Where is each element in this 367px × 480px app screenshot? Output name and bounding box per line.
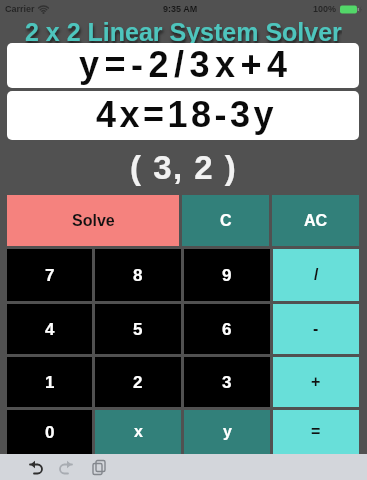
staticText: /	[314, 266, 319, 284]
button[interactable]	[25, 458, 45, 476]
staticText: 1	[45, 373, 55, 392]
staticText: 7	[45, 266, 55, 285]
button[interactable]: AC	[272, 195, 359, 246]
button[interactable]	[57, 458, 77, 476]
staticText: y	[223, 423, 232, 441]
button[interactable]: 6	[184, 304, 270, 354]
button[interactable]: y	[184, 410, 270, 454]
staticText: y=-2/3x+4	[79, 44, 293, 84]
staticText: 6	[222, 320, 232, 339]
staticText: 4	[45, 320, 55, 339]
button[interactable]: 2	[95, 357, 181, 407]
staticText: +	[311, 373, 321, 391]
staticText: AC	[304, 212, 328, 230]
staticText: 3	[222, 373, 232, 392]
staticText: 2	[133, 373, 143, 392]
staticText: Carrier	[5, 4, 35, 14]
staticText: ( 3, 2 )	[130, 149, 238, 186]
staticText: x	[134, 423, 143, 441]
staticText: -	[313, 320, 319, 338]
staticText: 100%	[313, 4, 337, 14]
button[interactable]: C	[182, 195, 269, 246]
staticText: 5	[133, 320, 143, 339]
staticText: 0	[45, 423, 55, 442]
button[interactable]: =	[273, 410, 359, 454]
button[interactable]: 7	[7, 249, 92, 301]
button[interactable]: 5	[95, 304, 181, 354]
staticText: 9	[222, 266, 232, 285]
button[interactable]: 9	[184, 249, 270, 301]
button[interactable]: 3	[184, 357, 270, 407]
button[interactable]: 1	[7, 357, 92, 407]
staticText: Solve	[72, 212, 115, 230]
button[interactable]: 0	[7, 410, 92, 454]
button[interactable]: y=-2/3x+4	[7, 43, 359, 88]
button[interactable]: x	[95, 410, 181, 454]
button[interactable]: +	[273, 357, 359, 407]
button[interactable]: Solve	[7, 195, 179, 246]
staticText: 2 x 2 Linear System Solver	[25, 18, 342, 43]
staticText: =	[311, 423, 321, 441]
button[interactable]: 8	[95, 249, 181, 301]
button[interactable]: 4	[7, 304, 92, 354]
button[interactable]	[89, 458, 109, 476]
button[interactable]: 4x=18-3y	[7, 91, 359, 140]
button[interactable]: -	[273, 304, 359, 354]
button[interactable]: /	[273, 249, 359, 301]
staticText: C	[220, 212, 232, 230]
staticText: 9:35 AM	[163, 4, 198, 14]
staticText: 8	[133, 266, 143, 285]
staticText: 4x=18-3y	[96, 94, 278, 134]
